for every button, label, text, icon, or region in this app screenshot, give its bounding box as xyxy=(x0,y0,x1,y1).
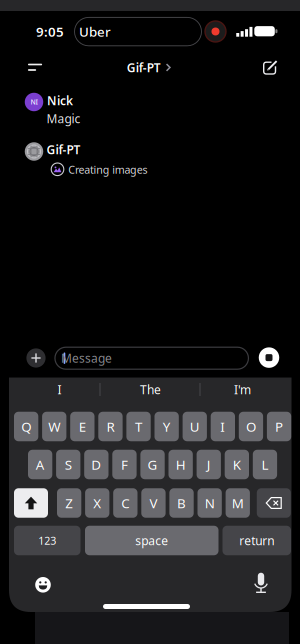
button[interactable] xyxy=(251,572,270,594)
staticText: return xyxy=(239,532,274,548)
staticText: H xyxy=(176,456,186,473)
staticText: L xyxy=(261,456,268,473)
button[interactable]: H xyxy=(168,450,193,479)
staticText: P xyxy=(275,418,283,435)
staticText: Creating images xyxy=(68,162,147,177)
button[interactable]: T xyxy=(126,412,151,441)
button[interactable]: Y xyxy=(154,412,179,441)
staticText: F xyxy=(121,456,128,473)
staticText: I xyxy=(220,418,225,435)
button[interactable]: I xyxy=(211,412,235,441)
button[interactable]: P xyxy=(267,412,291,441)
staticText: 9:05 xyxy=(36,23,64,40)
button[interactable]: D xyxy=(84,450,108,479)
staticText: 123 xyxy=(38,533,56,548)
button[interactable]: L xyxy=(253,450,277,479)
staticText: X xyxy=(93,494,101,512)
staticText: J xyxy=(207,456,211,473)
button[interactable]: R xyxy=(98,412,123,441)
staticText: Message xyxy=(61,350,112,366)
staticText: I'm xyxy=(234,381,251,397)
button[interactable]: Z xyxy=(57,488,81,518)
button[interactable]: X xyxy=(85,488,109,518)
button[interactable]: G xyxy=(140,450,165,479)
staticText: Uber xyxy=(79,23,111,40)
staticText: Gif-PT xyxy=(127,59,161,75)
button[interactable]: Gif-PT xyxy=(127,59,171,75)
button[interactable]: A xyxy=(28,450,52,479)
staticText: Y xyxy=(163,418,171,435)
button[interactable]: U xyxy=(183,412,207,441)
staticText: K xyxy=(233,456,241,473)
button[interactable]: 123 xyxy=(14,526,80,555)
staticText: Gif-PT xyxy=(46,141,80,157)
staticText: G xyxy=(148,456,158,473)
button[interactable]: V xyxy=(141,488,166,518)
staticText: A xyxy=(36,456,45,473)
staticText: N xyxy=(205,494,215,512)
staticText: W xyxy=(48,418,60,435)
staticText: B xyxy=(177,494,186,512)
button[interactable] xyxy=(14,488,48,518)
staticText: M xyxy=(232,494,244,512)
button[interactable]: Message xyxy=(55,347,248,369)
staticText: S xyxy=(65,456,72,473)
button[interactable] xyxy=(262,59,279,76)
staticText: E xyxy=(79,418,86,435)
button[interactable]: W xyxy=(42,412,66,441)
staticText: O xyxy=(246,418,256,435)
staticText: V xyxy=(149,494,157,512)
staticText: Magic xyxy=(46,110,80,126)
button[interactable]: N xyxy=(197,488,222,518)
button[interactable]: S xyxy=(56,450,80,479)
staticText: R xyxy=(106,418,114,435)
button[interactable]: The xyxy=(115,380,185,398)
button[interactable]: O xyxy=(239,412,263,441)
button[interactable]: space xyxy=(85,526,218,555)
button[interactable] xyxy=(28,63,43,72)
staticText: I xyxy=(57,381,61,397)
button[interactable]: Uber xyxy=(74,17,201,46)
staticText: U xyxy=(190,418,200,435)
staticText: Nick xyxy=(47,93,73,108)
button[interactable] xyxy=(259,347,279,368)
staticText: C xyxy=(121,494,129,512)
button[interactable]: I xyxy=(29,380,89,398)
button[interactable] xyxy=(257,488,291,518)
button[interactable] xyxy=(26,348,46,368)
staticText: D xyxy=(91,456,101,473)
button[interactable]: M xyxy=(226,488,250,518)
button[interactable]: return xyxy=(222,526,291,555)
button[interactable]: B xyxy=(169,488,194,518)
button[interactable]: J xyxy=(197,450,221,479)
button[interactable]: K xyxy=(225,450,249,479)
staticText: Z xyxy=(65,494,73,512)
button[interactable]: C xyxy=(113,488,137,518)
button[interactable]: I'm xyxy=(212,380,272,398)
staticText: Q xyxy=(21,418,31,435)
staticText: T xyxy=(135,418,142,435)
button[interactable]: Q xyxy=(14,412,38,441)
button[interactable] xyxy=(204,20,226,42)
button[interactable] xyxy=(34,576,51,593)
staticText: NI xyxy=(30,98,37,106)
button[interactable]: F xyxy=(112,450,137,479)
staticText: The xyxy=(140,381,161,397)
button[interactable]: E xyxy=(70,412,94,441)
staticText: space xyxy=(135,532,168,548)
